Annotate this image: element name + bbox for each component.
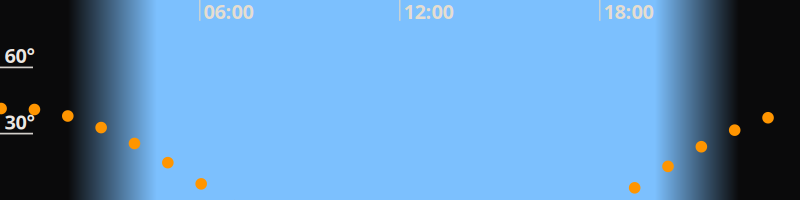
- staticText: 30°: [4, 108, 34, 135]
- button[interactable]: Sun altitude chart, sunrise 6:00, sunset…: [0, 0, 800, 200]
- staticText: 60°: [4, 42, 34, 69]
- staticText: 12:00: [403, 0, 453, 25]
- staticText: 18:00: [603, 0, 653, 25]
- staticText: 06:00: [203, 0, 253, 25]
